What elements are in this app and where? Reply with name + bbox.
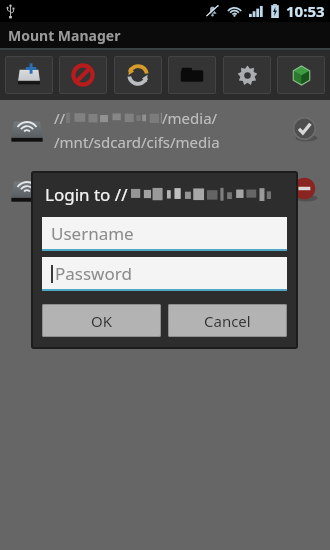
- staticText: /media/: [162, 108, 218, 128]
- button[interactable]: //: [0, 160, 330, 220]
- button[interactable]: Browse: [168, 56, 216, 94]
- staticText: //: [54, 108, 66, 128]
- button[interactable]: Unmount: [59, 56, 107, 94]
- staticText: Login to //: [45, 183, 128, 206]
- staticText: Mount Manager: [8, 26, 121, 45]
- staticText: Username: [51, 222, 134, 245]
- button[interactable]: OK: [42, 304, 161, 337]
- button[interactable]: Modules: [277, 56, 325, 94]
- button[interactable]: Refresh: [114, 56, 162, 94]
- button[interactable]: Settings: [223, 56, 271, 94]
- button[interactable]: Add mount: [5, 56, 53, 94]
- staticText: OK: [91, 311, 113, 331]
- button[interactable]: Username: [42, 217, 287, 249]
- staticText: /mnt/sdcard/cifs/media: [54, 132, 220, 152]
- staticText: Password: [55, 262, 132, 285]
- button[interactable]: Cancel: [168, 304, 287, 337]
- staticText: 10:53: [286, 1, 325, 21]
- staticText: //: [54, 172, 66, 192]
- button[interactable]: //: [0, 100, 330, 160]
- staticText: Cancel: [204, 311, 251, 331]
- button[interactable]: Password: [42, 257, 287, 289]
